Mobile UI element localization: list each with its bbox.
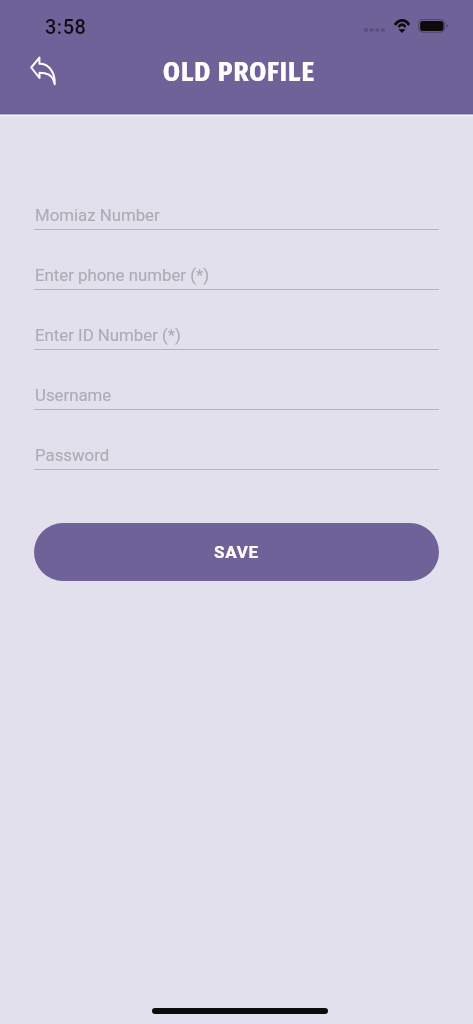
staticText: SAVE — [214, 542, 259, 562]
staticText: Enter ID Number (*) — [35, 325, 181, 345]
staticText: Password — [35, 445, 110, 465]
button[interactable]: Password — [34, 427, 439, 470]
staticText: 3:58 — [45, 15, 87, 38]
staticText: Enter phone number (*) — [35, 265, 209, 285]
button[interactable]: SAVE — [34, 523, 439, 581]
button[interactable]: Username — [34, 367, 439, 410]
button[interactable]: Enter phone number (*) — [34, 247, 439, 290]
staticText: Username — [35, 385, 112, 405]
button[interactable]: Enter ID Number (*) — [34, 307, 439, 350]
staticText: OLD PROFILE — [163, 56, 316, 88]
staticText: Momiaz Number — [35, 205, 160, 225]
button[interactable]: Momiaz Number — [34, 187, 439, 230]
button[interactable]: Back — [18, 47, 66, 95]
